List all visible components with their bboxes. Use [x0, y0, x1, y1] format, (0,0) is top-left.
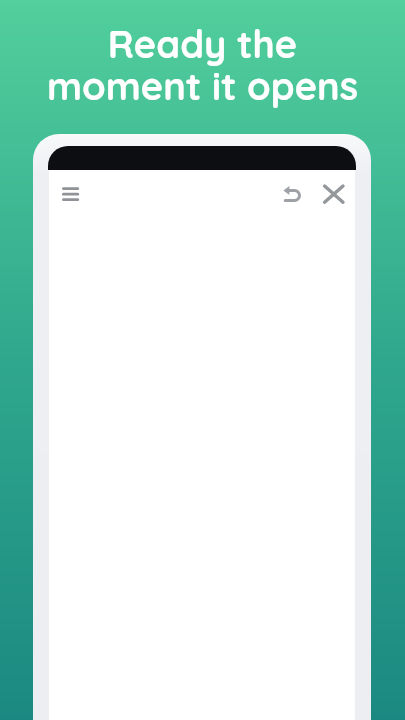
button[interactable] — [323, 185, 345, 203]
button[interactable] — [283, 185, 301, 202]
staticText: Ready the moment it opens — [0, 20, 405, 109]
button[interactable] — [62, 186, 79, 202]
